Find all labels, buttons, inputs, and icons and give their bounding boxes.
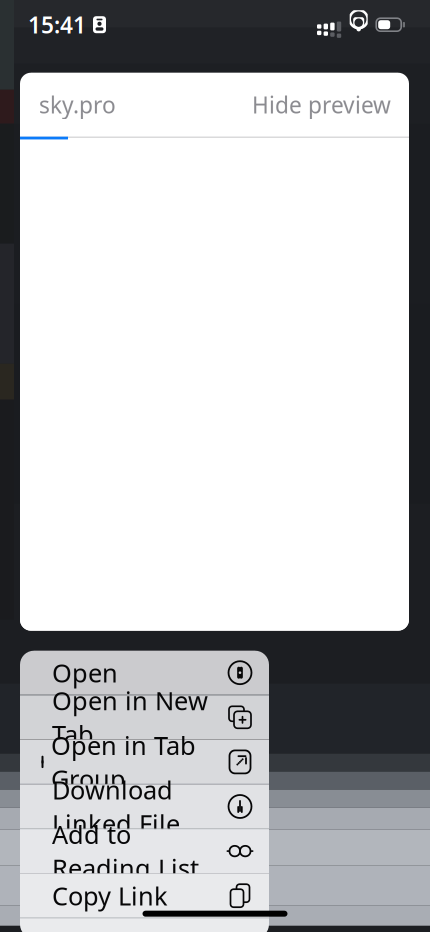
staticText: Download Linked File: [52, 773, 180, 840]
staticText: Open: [52, 656, 118, 689]
button[interactable]: Open in New Tab: [20, 695, 269, 739]
button[interactable]: Copy Link: [20, 874, 269, 918]
staticText: Copy Link: [52, 879, 168, 912]
staticText: Add to Reading List: [52, 817, 199, 885]
staticText: Hide preview: [252, 90, 391, 120]
button[interactable]: Download Linked File: [20, 784, 269, 828]
staticText: 15:41: [28, 10, 86, 40]
staticText: Open in New Tab: [52, 684, 208, 751]
button[interactable]: Open in Tab Group: [20, 740, 269, 784]
staticText: Open in Tab Group: [51, 728, 196, 796]
button[interactable]: Add to Reading List: [20, 829, 269, 873]
button[interactable]: Hide preview: [252, 90, 391, 120]
staticText: sky.pro: [39, 90, 116, 120]
button[interactable]: Open: [20, 651, 269, 695]
